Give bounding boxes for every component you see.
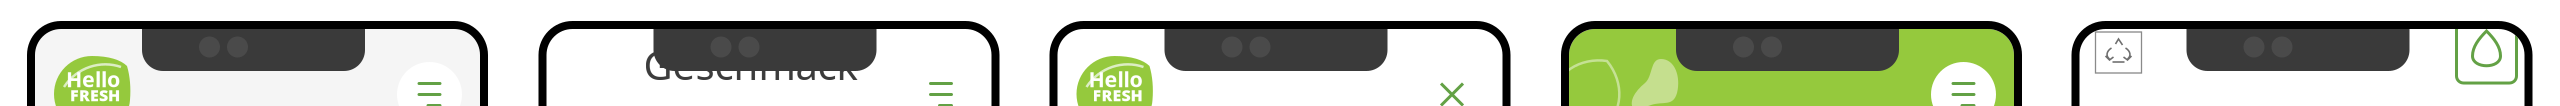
staticText: Hello <box>66 65 120 93</box>
button[interactable]: Open menu <box>397 62 462 106</box>
staticText: Erlebe neuen Geschmack <box>643 0 894 91</box>
staticText: Hello <box>1088 65 1142 93</box>
staticText: FRESH <box>70 84 120 106</box>
button[interactable]: Open menu <box>1931 62 1996 106</box>
button[interactable]: Open menu <box>908 62 973 106</box>
button[interactable]: Close <box>1419 62 1484 106</box>
staticText: FRESH <box>1092 84 1142 106</box>
